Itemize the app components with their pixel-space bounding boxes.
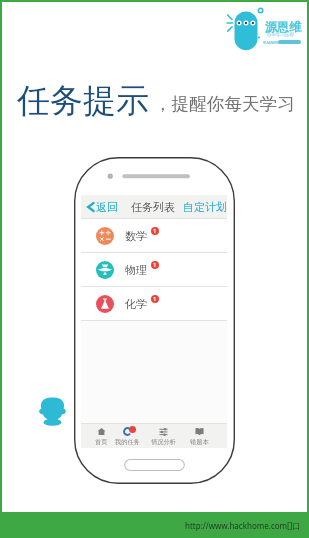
staticText: 自由学习乐园 [267, 32, 294, 38]
staticText: 情况分析 [151, 438, 176, 446]
button[interactable]: 首页 [86, 424, 116, 448]
staticText: ，提醒你每天学习 [154, 93, 295, 115]
button[interactable]: 物理 [81, 253, 227, 286]
staticText: 物理 [125, 263, 147, 277]
button[interactable]: 化学 [81, 287, 227, 320]
staticText: 1 [153, 295, 157, 303]
button[interactable]: 数学 [81, 219, 227, 252]
staticText: 源恩维 [265, 19, 301, 34]
staticText: http://www.hackhome.com[]口 [185, 520, 301, 531]
staticText: 错题本 [190, 438, 209, 446]
button[interactable]: 自定计划 [179, 195, 231, 218]
staticText: 1 [153, 261, 157, 269]
staticText: YUANENWEI [263, 40, 286, 45]
staticText: 我的任务 [115, 438, 140, 446]
button[interactable]: 返回 [84, 195, 121, 218]
staticText: 数学 [125, 229, 147, 243]
staticText: 首页 [95, 438, 108, 446]
staticText: 1 [153, 227, 157, 235]
button[interactable]: 错题本 [184, 424, 214, 448]
button[interactable]: 我的任务 [112, 424, 142, 448]
staticText: 返回 [96, 200, 118, 214]
staticText: 化学 [125, 297, 147, 311]
staticText: 任务列表 [131, 200, 175, 214]
staticText: 任务提示 [17, 80, 149, 122]
staticText: 自定计划 [183, 200, 227, 214]
button[interactable]: 情况分析 [148, 424, 178, 448]
